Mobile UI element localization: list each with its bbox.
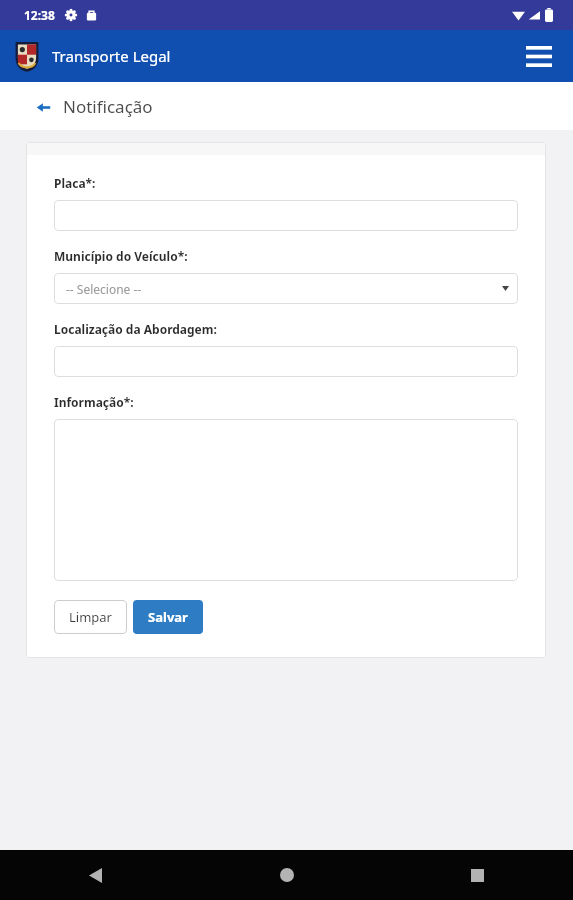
staticText: 12:38: [24, 7, 55, 23]
button[interactable]: [54, 200, 518, 231]
staticText: Localização da Abordagem:: [54, 321, 217, 337]
button[interactable]: Home: [191, 850, 382, 900]
staticText: Placa*:: [54, 175, 96, 191]
button[interactable]: Menu: [515, 32, 563, 80]
staticText: Salvar: [148, 608, 188, 626]
button[interactable]: Limpar: [54, 600, 127, 634]
button[interactable]: Voltar: [34, 95, 153, 118]
staticText: Município do Veículo*:: [54, 248, 188, 264]
button[interactable]: Recent apps: [382, 850, 573, 900]
staticText: Notificação: [63, 95, 153, 118]
staticText: Limpar: [69, 608, 112, 626]
staticText: Informação*:: [54, 394, 134, 410]
other: Voltar: [34, 98, 52, 116]
button[interactable]: -- Selecione --: [54, 273, 518, 304]
button[interactable]: Back: [0, 850, 191, 900]
staticText: Transporte Legal: [52, 46, 171, 66]
button[interactable]: [54, 346, 518, 377]
staticText: -- Selecione --: [66, 281, 142, 297]
button[interactable]: Salvar: [133, 600, 203, 634]
button[interactable]: [54, 419, 518, 581]
